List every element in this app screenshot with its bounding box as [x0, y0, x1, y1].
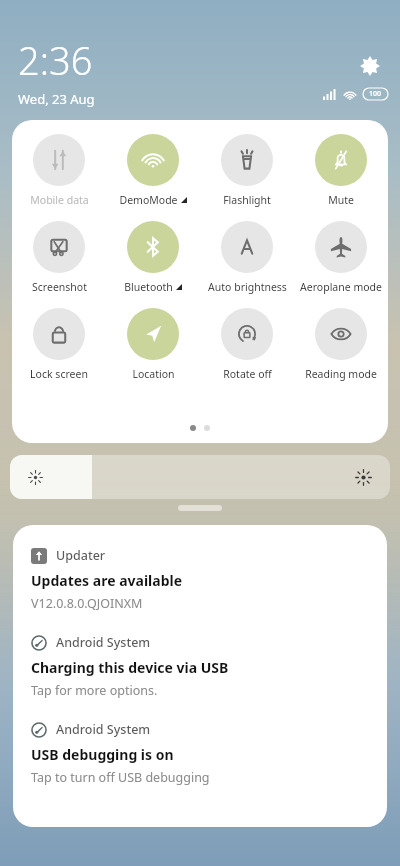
staticText: Android System: [56, 721, 151, 738]
button[interactable]: Lock screen: [12, 308, 106, 381]
staticText: 2:36: [18, 34, 93, 86]
button[interactable]: DemoMode: [106, 134, 200, 207]
button[interactable]: Updater: [31, 547, 369, 612]
button[interactable]: Auto brightness: [200, 221, 294, 294]
button[interactable]: Brightness: [10, 455, 390, 499]
staticText: Aeroplane mode: [300, 280, 382, 294]
staticText: Wed, 23 Aug: [18, 90, 95, 108]
button[interactable]: Rotate off: [200, 308, 294, 381]
button[interactable]: Aeroplane mode: [294, 221, 388, 294]
staticText: Tap to turn off USB debugging: [31, 769, 210, 786]
button[interactable]: Location: [106, 308, 200, 381]
staticText: Charging this device via USB: [31, 658, 229, 677]
staticText: Updater: [56, 547, 106, 564]
button[interactable]: Settings: [354, 50, 386, 82]
staticText: Flashlight: [223, 193, 271, 207]
staticText: Reading mode: [305, 367, 377, 381]
button[interactable]: Bluetooth: [106, 221, 200, 294]
staticText: Lock screen: [30, 367, 88, 381]
button[interactable]: Android System: [31, 634, 369, 699]
staticText: Screenshot: [32, 280, 87, 294]
button[interactable]: Drag handle: [178, 505, 222, 511]
staticText: Tap for more options.: [31, 682, 158, 699]
staticText: Bluetooth: [124, 280, 173, 294]
staticText: Updates are available: [31, 571, 183, 590]
staticText: Location: [132, 367, 175, 381]
button[interactable]: Screenshot: [12, 221, 106, 294]
staticText: USB debugging is on: [31, 745, 174, 764]
staticText: V12.0.8.0.QJOINXM: [31, 595, 143, 612]
staticText: Auto brightness: [208, 280, 287, 294]
staticText: Rotate off: [223, 367, 272, 381]
staticText: DemoMode: [119, 193, 178, 207]
button[interactable]: Flashlight: [200, 134, 294, 207]
button[interactable]: Android System: [31, 721, 369, 786]
button[interactable]: Mute: [294, 134, 388, 207]
staticText: 100: [369, 89, 382, 99]
staticText: Mute: [328, 193, 354, 207]
staticText: Android System: [56, 634, 151, 651]
button[interactable]: Reading mode: [294, 308, 388, 381]
button[interactable]: Mobile data: [12, 134, 106, 207]
staticText: Mobile data: [30, 193, 89, 207]
